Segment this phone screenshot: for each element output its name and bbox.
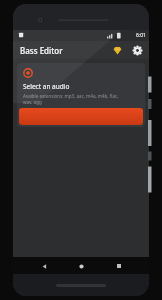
staticText: Bass Editor xyxy=(20,45,63,56)
button[interactable]: Premium xyxy=(111,44,124,57)
button[interactable]: Settings xyxy=(131,44,144,57)
button[interactable]: Select an audio xyxy=(17,63,145,127)
staticText: Avaible extensions: mp3, aac, m4a, m4b, … xyxy=(23,93,119,105)
button[interactable]: Recents xyxy=(112,259,126,273)
staticText: 6:01 xyxy=(136,32,146,39)
button[interactable]: Select audio file xyxy=(19,108,143,125)
staticText: Select an audio xyxy=(23,82,70,91)
button[interactable]: Back xyxy=(37,259,51,273)
button[interactable]: Home xyxy=(74,259,88,273)
